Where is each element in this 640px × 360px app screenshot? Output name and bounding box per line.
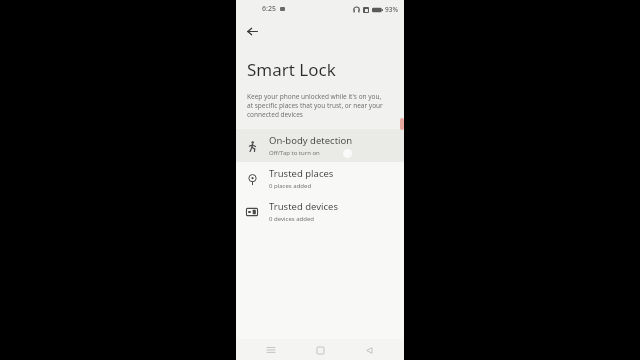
button[interactable]: Back bbox=[360, 341, 378, 359]
staticText: 6:25 bbox=[262, 4, 276, 14]
staticText: 0 devices added bbox=[269, 215, 315, 223]
button[interactable]: Recent apps bbox=[262, 341, 280, 359]
staticText: Trusted places bbox=[269, 167, 334, 180]
staticText: Smart Lock bbox=[247, 58, 336, 81]
button[interactable]: Back bbox=[243, 22, 261, 40]
staticText: Trusted devices bbox=[269, 200, 339, 213]
staticText: 93% bbox=[385, 5, 398, 14]
staticText: Keep your phone unlocked while it's on y… bbox=[247, 92, 388, 119]
button[interactable]: Home bbox=[311, 341, 329, 359]
staticText: 0 places added bbox=[269, 182, 312, 190]
staticText: Off/Tap to turn on bbox=[269, 149, 320, 157]
staticText: On-body detection bbox=[269, 134, 353, 147]
button[interactable]: Trusted places bbox=[236, 162, 404, 195]
button[interactable]: On-body detection bbox=[236, 129, 404, 162]
button[interactable]: Trusted devices bbox=[236, 195, 404, 228]
